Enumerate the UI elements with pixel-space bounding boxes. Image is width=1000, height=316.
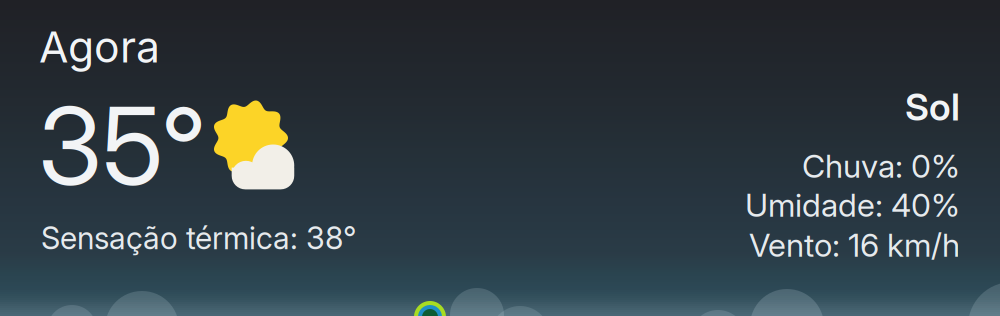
- staticText: Chuva: 0%: [802, 147, 960, 185]
- staticText: 35°: [38, 81, 206, 211]
- staticText: Sol: [905, 84, 960, 130]
- staticText: Umidade: 40%: [745, 186, 960, 224]
- staticText: Sensação térmica: 38°: [41, 219, 356, 256]
- staticText: Vento: 16 km/h: [749, 226, 960, 264]
- staticText: Agora: [39, 21, 160, 73]
